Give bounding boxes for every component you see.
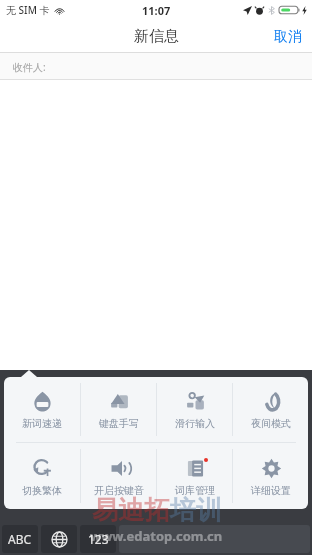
staticText: 词库管理 [175,484,215,497]
button[interactable]: 详细设置 [233,443,308,509]
button[interactable]: 收件人: [0,53,312,80]
button[interactable]: ABC [2,525,38,553]
staticText: 123 [88,531,109,547]
staticText: 11:07 [142,3,171,18]
button[interactable]: 夜间模式 [233,377,308,442]
staticText: ABC [8,531,32,547]
button[interactable]: Keyboard option [209,527,259,555]
button[interactable]: Baidu input menu [0,527,56,555]
button[interactable]: 开启按键音 [81,443,156,509]
staticText: 详细设置 [251,484,291,497]
button[interactable]: Voice input [281,496,305,520]
staticText: 夜间模式 [251,417,291,430]
staticText: 新词速递 [22,417,62,430]
button[interactable]: 词库管理 [157,443,232,509]
button[interactable]: Keyboard option [57,527,106,555]
button[interactable] [37,497,275,519]
button[interactable]: 键盘手写 [81,377,156,442]
staticText: www.edatop.com.cn [90,527,223,545]
button[interactable]: 切换繁体 [4,443,80,509]
button[interactable]: Keyboard option [107,527,157,555]
staticText: 键盘手写 [99,417,139,430]
staticText: 易迪拓 [92,494,170,527]
staticText: 开启按键音 [94,484,144,497]
button[interactable]: Camera [7,495,33,521]
button[interactable]: 滑行输入 [157,377,232,442]
staticText: 无 SIM 卡 [6,3,50,17]
staticText: 培训 [170,494,222,527]
button[interactable]: Space [119,525,310,553]
staticText: 新信息 [134,27,179,46]
button[interactable]: Change language [41,525,77,553]
button[interactable]: 新词速递 [4,377,80,442]
staticText: 收件人: [13,60,46,74]
staticText: 取消 [274,28,302,46]
button[interactable]: 取消 [264,22,312,52]
staticText: 切换繁体 [22,484,62,497]
staticText: 滑行输入 [175,417,215,430]
button[interactable]: Keyboard option [158,527,208,555]
button[interactable]: Collapse keyboard [260,527,312,555]
button[interactable]: 123 [80,525,116,553]
